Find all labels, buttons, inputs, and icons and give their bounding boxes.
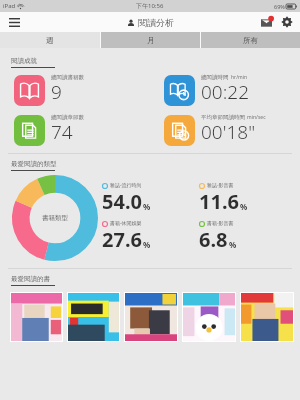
button[interactable]: Book cover: [68, 293, 119, 341]
staticText: %: [229, 239, 237, 250]
staticText: iPad: [3, 2, 16, 10]
button[interactable]: Book cover: [241, 293, 293, 341]
button[interactable]: 所有: [201, 32, 300, 48]
button[interactable]: 書籍-影音書: [199, 220, 296, 254]
staticText: hr/min: [231, 74, 248, 81]
button[interactable]: Book cover: [125, 293, 177, 341]
staticText: %: [143, 201, 151, 212]
button[interactable]: 書籍-休閒娛樂: [102, 220, 199, 254]
button[interactable]: 平均章節閱讀時間: [164, 114, 300, 147]
button[interactable]: 總閱讀書籍數: [14, 74, 150, 107]
staticText: 69%: [274, 3, 285, 10]
button[interactable]: 月: [101, 32, 200, 48]
staticText: 00:22: [201, 79, 250, 105]
staticText: 閱讀分析: [138, 17, 174, 28]
staticText: %: [143, 239, 151, 250]
staticText: 雜誌-流行時尚: [110, 182, 142, 189]
button[interactable]: 雜誌-流行時尚: [102, 182, 199, 216]
staticText: 書籍-影音書: [207, 220, 234, 227]
staticText: 閱讀成就: [11, 57, 37, 65]
staticText: 最愛閱讀的書: [11, 275, 50, 283]
staticText: 下午10:56: [136, 2, 164, 10]
staticText: 雜誌-影音書: [207, 182, 234, 189]
staticText: 54.0: [102, 188, 142, 215]
button[interactable]: Book cover: [183, 293, 235, 341]
staticText: 6.8: [199, 226, 228, 253]
staticText: 總閱讀時間: [201, 74, 229, 81]
staticText: 最愛閱讀的類型: [11, 160, 57, 168]
staticText: 9: [51, 79, 62, 105]
staticText: 00'18": [201, 119, 256, 145]
staticText: 月: [147, 36, 155, 45]
staticText: 所有: [243, 36, 258, 45]
button[interactable]: 雜誌-影音書: [199, 182, 296, 216]
button[interactable]: 總閱讀章節數: [14, 114, 150, 147]
button[interactable]: Book cover: [11, 293, 62, 341]
staticText: 總閱讀章節數: [51, 114, 84, 121]
staticText: 27.6: [102, 226, 142, 253]
button[interactable]: Menu: [6, 14, 22, 30]
staticText: 書籍-休閒娛樂: [110, 220, 142, 227]
staticText: 書籍類型: [42, 214, 68, 222]
button[interactable]: Messages: [258, 14, 274, 30]
staticText: min/sec: [247, 114, 266, 121]
staticText: 平均章節閱讀時間: [201, 114, 245, 121]
staticText: 11.6: [199, 188, 239, 215]
staticText: 週: [46, 36, 54, 45]
button[interactable]: 總閱讀時間: [164, 74, 300, 107]
staticText: %: [240, 201, 248, 212]
button[interactable]: Settings: [279, 14, 295, 30]
staticText: 總閱讀書籍數: [51, 74, 84, 81]
button[interactable]: 週: [0, 32, 100, 48]
staticText: 74: [51, 119, 73, 145]
